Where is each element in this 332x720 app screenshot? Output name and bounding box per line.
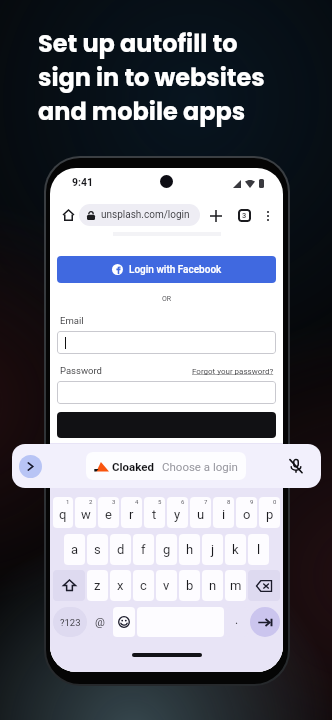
- button[interactable]: Home: [59, 206, 78, 225]
- staticText: m: [230, 578, 242, 593]
- button[interactable]: j: [202, 534, 223, 565]
- staticText: z: [94, 578, 101, 593]
- staticText: u: [197, 507, 205, 522]
- button[interactable]: s: [87, 534, 108, 565]
- button[interactable]: i: [213, 497, 234, 528]
- staticText: OR: [57, 295, 276, 303]
- staticText: ?123: [60, 617, 81, 628]
- button[interactable]: Login with Facebook: [57, 256, 276, 283]
- button[interactable]: p: [259, 497, 280, 528]
- staticText: 9: [250, 498, 254, 505]
- button[interactable]: unsplash.com/login: [79, 204, 200, 226]
- staticText: 2: [89, 498, 93, 505]
- staticText: y: [174, 507, 181, 522]
- staticText: a: [71, 542, 79, 557]
- staticText: 3: [112, 498, 116, 505]
- button[interactable]: Backspace: [248, 570, 280, 601]
- staticText: t: [152, 507, 157, 522]
- button[interactable]: t: [144, 497, 165, 528]
- staticText: 4: [135, 498, 139, 505]
- staticText: x: [117, 578, 124, 593]
- button[interactable]: [57, 331, 276, 354]
- staticText: r: [129, 507, 134, 522]
- button[interactable]: a: [64, 534, 85, 565]
- staticText: g: [163, 542, 171, 557]
- button[interactable]: g: [156, 534, 177, 565]
- staticText: c: [140, 578, 147, 593]
- staticText: and mobile apps: [38, 95, 246, 129]
- button[interactable]: l: [248, 534, 269, 565]
- button[interactable]: Expand suggestions: [19, 455, 42, 478]
- staticText: s: [94, 542, 101, 557]
- button[interactable]: r: [121, 497, 142, 528]
- button[interactable]: d: [110, 534, 131, 565]
- button[interactable]: Emoji: [113, 607, 135, 637]
- staticText: .: [235, 613, 239, 627]
- staticText: n: [209, 578, 217, 593]
- staticText: 9:41: [72, 176, 94, 188]
- staticText: Login with Facebook: [129, 264, 222, 276]
- button[interactable]: x: [110, 570, 131, 601]
- button[interactable]: Expand suggestions: [12, 444, 321, 488]
- button[interactable]: More options: [260, 208, 275, 223]
- button[interactable]: ?123: [53, 607, 87, 637]
- staticText: v: [163, 578, 170, 593]
- button[interactable]: k: [225, 534, 246, 565]
- button[interactable]: w: [75, 497, 96, 528]
- staticText: w: [81, 507, 91, 522]
- staticText: Password: [60, 365, 102, 376]
- button[interactable]: Shift: [53, 570, 85, 601]
- button[interactable]: u: [190, 497, 211, 528]
- button[interactable]: Tabs: [238, 209, 251, 222]
- staticText: Set up autofill to: [38, 27, 238, 61]
- button[interactable]: e: [98, 497, 119, 528]
- button[interactable]: New tab: [206, 206, 225, 225]
- button[interactable]: Voice input muted: [285, 455, 307, 477]
- staticText: e: [105, 507, 112, 522]
- staticText: 6: [181, 498, 185, 505]
- staticText: 1: [66, 498, 70, 505]
- button[interactable]: [57, 412, 276, 438]
- button[interactable]: @: [89, 607, 111, 637]
- button[interactable]: h: [179, 534, 200, 565]
- staticText: 0: [273, 498, 277, 505]
- button[interactable]: .: [226, 607, 248, 637]
- staticText: h: [186, 542, 194, 557]
- staticText: Choose a login: [162, 460, 238, 473]
- button[interactable]: n: [202, 570, 223, 601]
- button[interactable]: v: [156, 570, 177, 601]
- staticText: 8: [227, 498, 231, 505]
- staticText: unsplash.com/login: [101, 209, 190, 221]
- staticText: Cloaked: [112, 460, 154, 473]
- staticText: b: [186, 578, 194, 593]
- button[interactable]: m: [225, 570, 246, 601]
- button[interactable]: Forgot your password?: [192, 367, 274, 376]
- staticText: p: [266, 507, 274, 522]
- staticText: f: [141, 542, 146, 557]
- staticText: d: [117, 542, 125, 557]
- staticText: k: [232, 542, 239, 557]
- button[interactable]: Cloaked: [86, 452, 246, 480]
- button[interactable]: z: [87, 570, 108, 601]
- staticText: l: [257, 542, 261, 557]
- staticText: j: [211, 542, 215, 557]
- button[interactable]: q: [53, 497, 73, 528]
- staticText: @: [95, 616, 105, 629]
- button[interactable]: [57, 381, 276, 404]
- staticText: sign in to websites: [38, 61, 265, 95]
- staticText: 3: [242, 211, 247, 220]
- staticText: Email: [60, 315, 84, 326]
- staticText: q: [59, 507, 67, 522]
- staticText: 5: [158, 498, 162, 505]
- button[interactable]: c: [133, 570, 154, 601]
- button[interactable]: f: [133, 534, 154, 565]
- button[interactable]: Enter: [250, 607, 280, 637]
- button[interactable]: y: [167, 497, 188, 528]
- button[interactable]: o: [236, 497, 257, 528]
- button[interactable]: b: [179, 570, 200, 601]
- staticText: i: [222, 507, 226, 522]
- staticText: o: [243, 507, 251, 522]
- staticText: 7: [204, 498, 208, 505]
